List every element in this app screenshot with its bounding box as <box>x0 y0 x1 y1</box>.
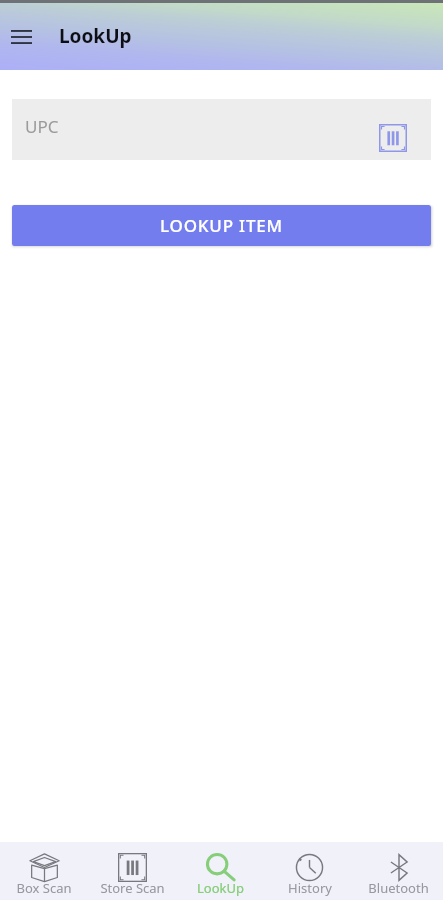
staticText: Bluetooth <box>368 879 429 897</box>
button[interactable]: Menu <box>10 25 32 49</box>
staticText: UPC <box>25 115 59 138</box>
button[interactable]: LookUp <box>176 842 265 900</box>
staticText: LookUp <box>59 23 132 49</box>
button[interactable]: History <box>265 842 354 900</box>
button[interactable]: Box Scan <box>0 842 88 900</box>
staticText: History <box>288 879 332 897</box>
button[interactable]: Bluetooth <box>354 842 443 900</box>
staticText: LOOKUP ITEM <box>160 214 283 237</box>
button[interactable]: Store Scan <box>88 842 176 900</box>
staticText: Store Scan <box>100 879 165 897</box>
staticText: LookUp <box>197 879 244 897</box>
button[interactable]: Scan barcode <box>378 123 407 152</box>
button[interactable]: UPC <box>12 99 431 160</box>
staticText: Box Scan <box>16 879 72 897</box>
button[interactable]: LOOKUP ITEM <box>12 205 431 246</box>
